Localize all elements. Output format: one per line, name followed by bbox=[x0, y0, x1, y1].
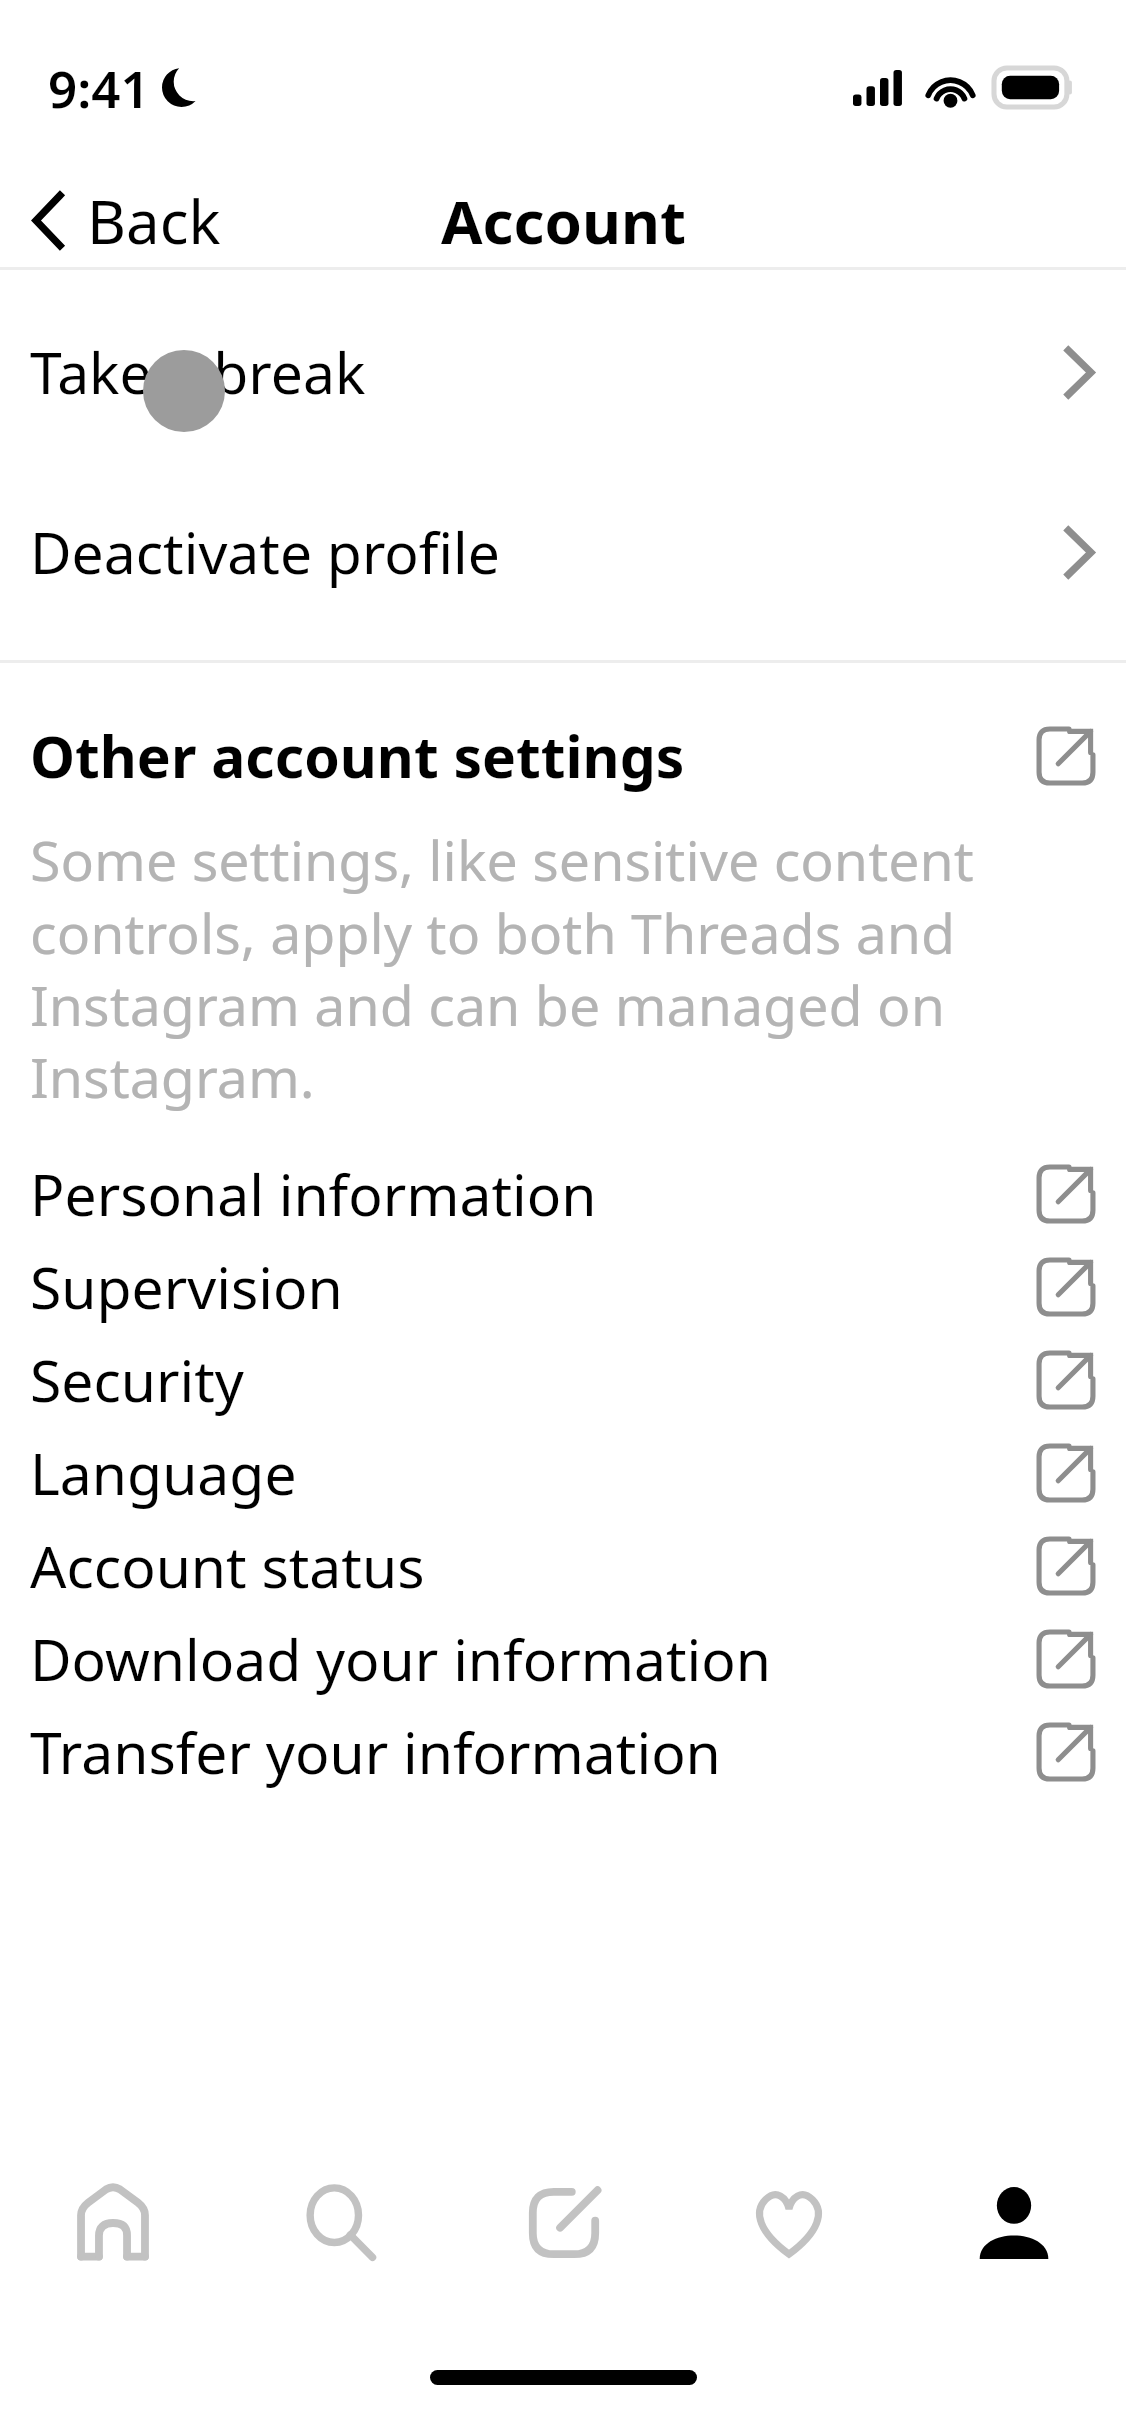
button[interactable]: Activity bbox=[676, 2160, 901, 2352]
other: Open in Instagram bbox=[1036, 1629, 1096, 1689]
button[interactable]: Other account settings bbox=[0, 696, 1126, 816]
staticText: Download your information bbox=[30, 1620, 771, 1698]
button[interactable]: Deactivate profile bbox=[0, 483, 1126, 621]
staticText: Take a break bbox=[30, 333, 366, 411]
staticText: Security bbox=[30, 1341, 244, 1419]
button[interactable]: Compose bbox=[451, 2160, 676, 2352]
button[interactable]: Take a break bbox=[0, 303, 1126, 441]
other: Open in Instagram bbox=[1036, 1164, 1096, 1224]
other: Open in Instagram bbox=[1036, 1536, 1096, 1596]
other: Open in Instagram bbox=[1036, 726, 1096, 786]
other: Open in Instagram bbox=[1036, 1443, 1096, 1503]
staticText: Language bbox=[30, 1434, 297, 1512]
staticText: 9:41 bbox=[48, 53, 150, 122]
button[interactable]: Supervision bbox=[0, 1240, 1126, 1333]
staticText: Deactivate profile bbox=[30, 513, 500, 591]
button[interactable]: Transfer your information bbox=[0, 1705, 1126, 1798]
button[interactable]: Profile bbox=[901, 2160, 1126, 2352]
button[interactable]: Back bbox=[0, 174, 251, 267]
other: Open in Instagram bbox=[1036, 1257, 1096, 1317]
staticText: Supervision bbox=[30, 1248, 343, 1326]
other: Open in Instagram bbox=[1036, 1350, 1096, 1410]
button[interactable]: Search bbox=[226, 2160, 451, 2352]
staticText: Some settings, like sensitive content co… bbox=[30, 822, 1096, 1114]
button[interactable]: Security bbox=[0, 1333, 1126, 1426]
button[interactable]: Personal information bbox=[0, 1147, 1126, 1240]
staticText: Account bbox=[441, 180, 686, 262]
staticText: Account status bbox=[30, 1527, 425, 1605]
button[interactable]: Home bbox=[0, 2160, 226, 2352]
button[interactable]: Account status bbox=[0, 1519, 1126, 1612]
button[interactable]: Download your information bbox=[0, 1612, 1126, 1705]
button[interactable]: Language bbox=[0, 1426, 1126, 1519]
staticText: Back bbox=[87, 180, 221, 261]
staticText: Other account settings bbox=[30, 717, 685, 795]
other: Open in Instagram bbox=[1036, 1722, 1096, 1782]
staticText: Personal information bbox=[30, 1155, 597, 1233]
staticText: Transfer your information bbox=[30, 1713, 721, 1791]
